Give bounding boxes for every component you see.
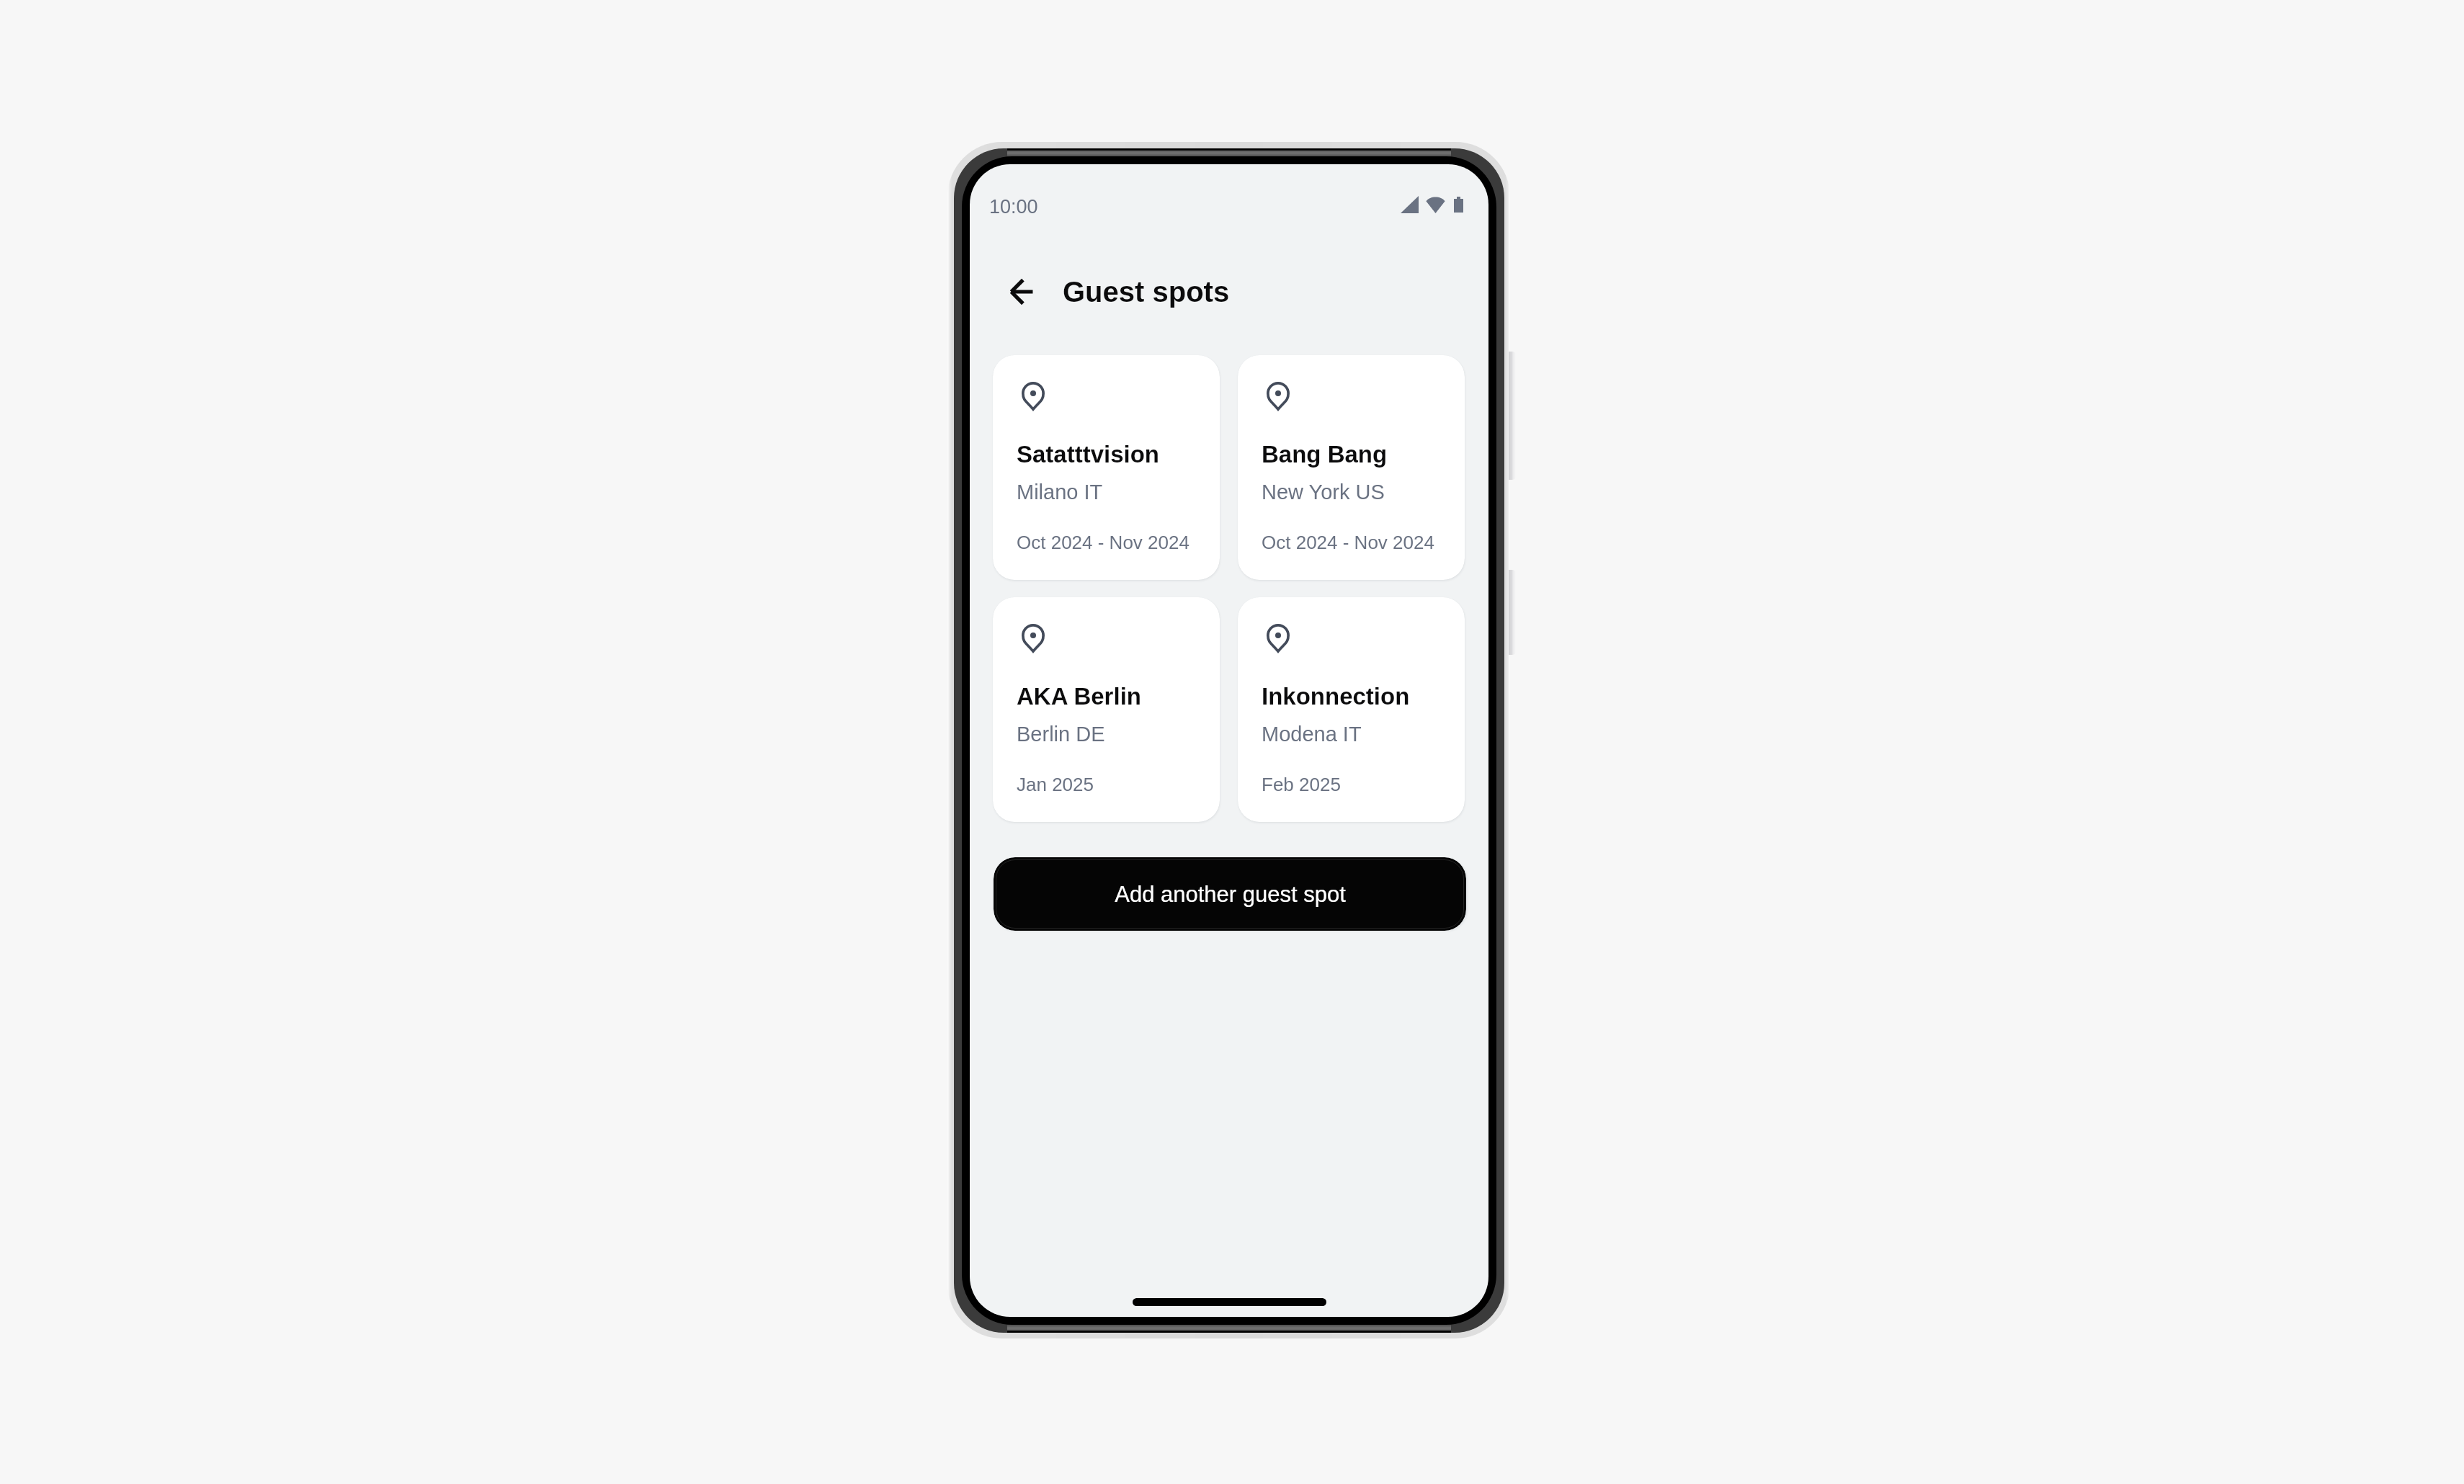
staticText: Milano IT [1017,480,1103,504]
staticText: AKA Berlin [1017,683,1141,710]
staticText: Add another guest spot [1115,882,1346,907]
staticText: Inkonnection [1262,683,1410,710]
staticText: Jan 2025 [1017,774,1094,795]
staticText: Satatttvision [1017,441,1160,468]
staticText: Oct 2024 - Nov 2024 [1017,532,1189,553]
button[interactable]: Add another guest spot [994,857,1466,931]
staticText: Berlin DE [1017,723,1105,746]
staticText: Oct 2024 - Nov 2024 [1262,532,1434,553]
staticText: Bang Bang [1262,441,1388,468]
staticText: Feb 2025 [1262,774,1341,795]
button[interactable]: Satatttvision [993,355,1220,580]
staticText: New York US [1262,480,1385,504]
button[interactable]: Back [1000,271,1042,313]
staticText: Guest spots [1063,276,1230,308]
staticText: 10:00 [989,196,1038,218]
button[interactable]: Inkonnection [1238,597,1465,822]
button[interactable]: AKA Berlin [993,597,1220,822]
button[interactable]: Bang Bang [1238,355,1465,580]
staticText: Modena IT [1262,723,1362,746]
